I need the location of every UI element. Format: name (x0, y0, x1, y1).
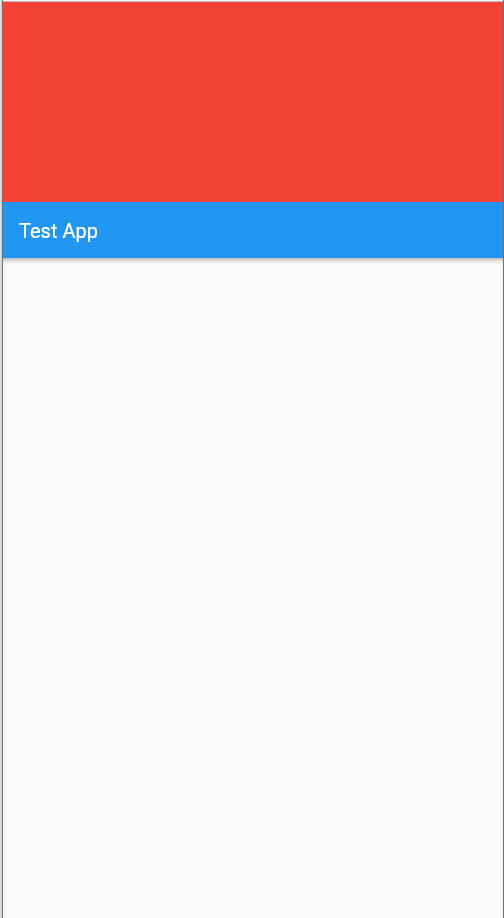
button[interactable]: Test App (0, 202, 504, 258)
staticText: Test App (19, 219, 98, 242)
